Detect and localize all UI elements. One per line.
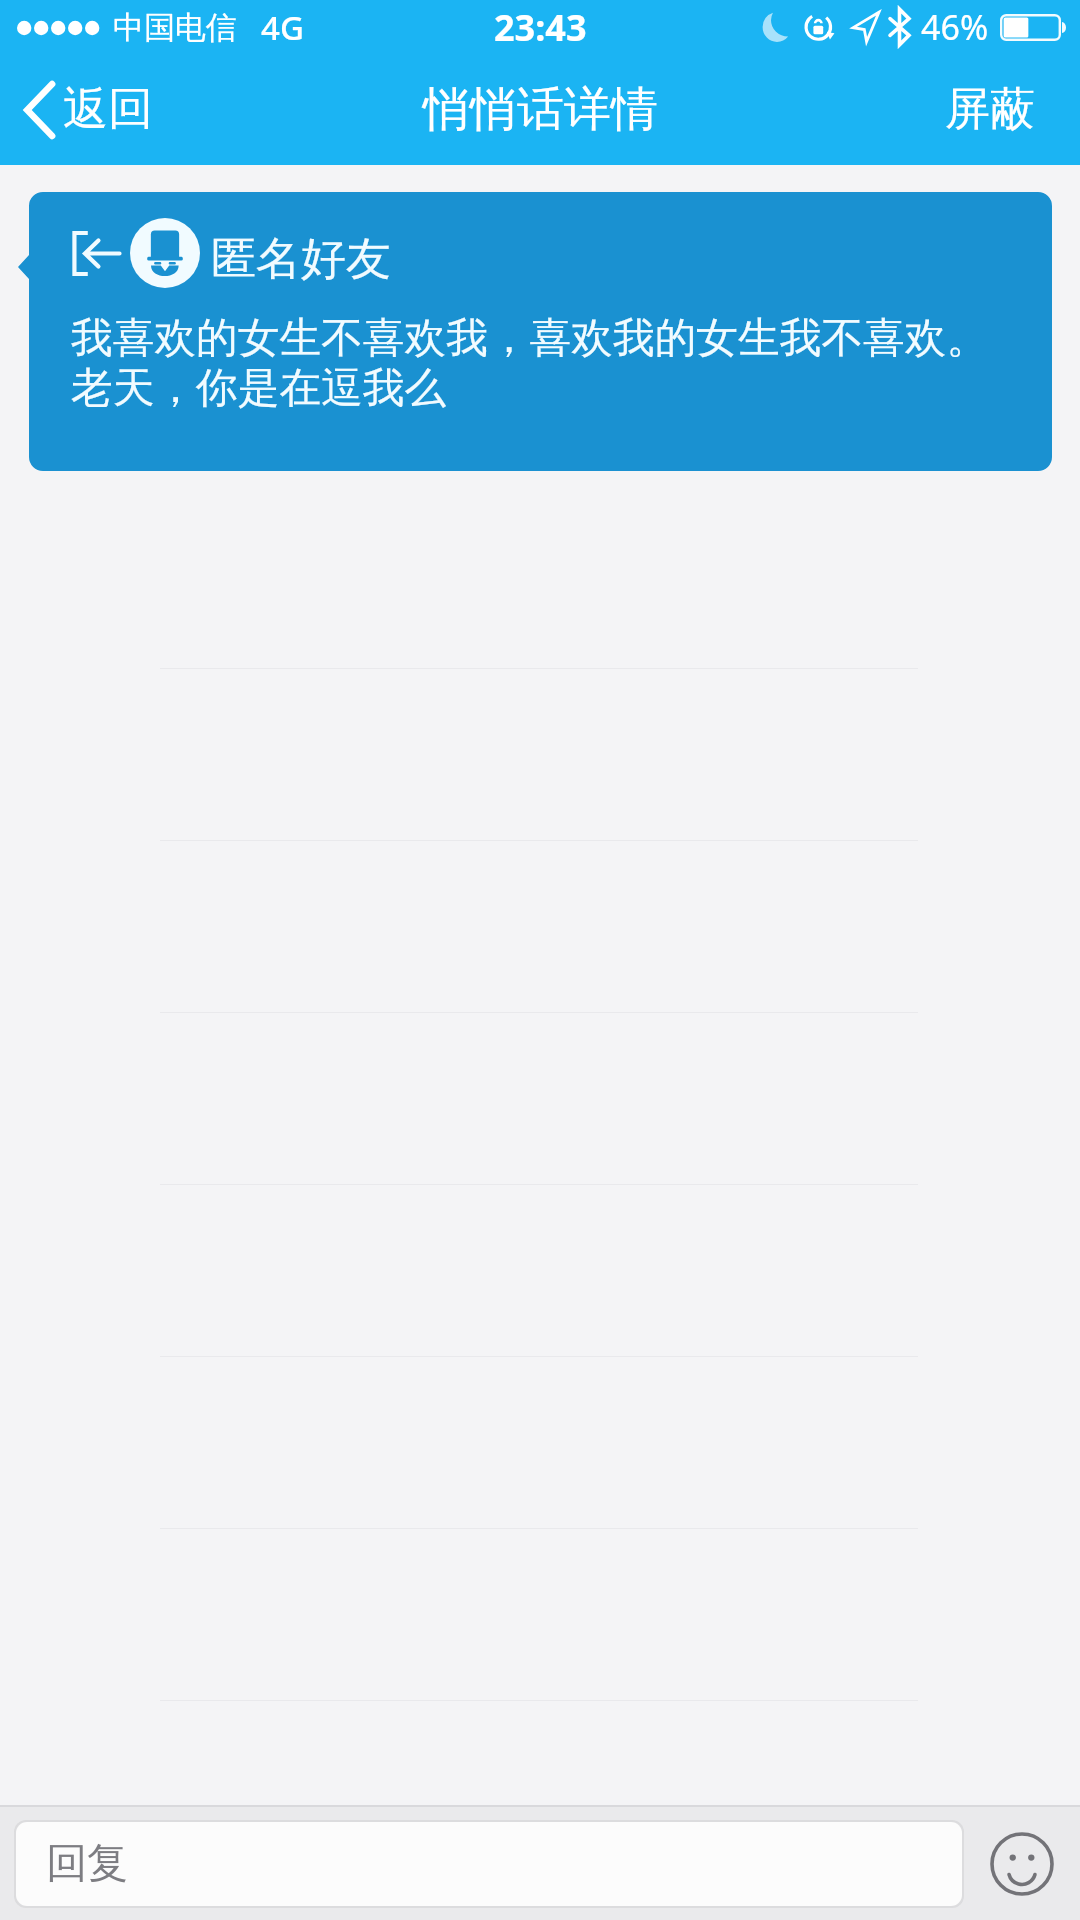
staticText: 23:43 [494,3,587,52]
staticText: 返回 [63,81,153,138]
staticText: 悄悄话详情 [423,80,658,139]
button[interactable]: 回复 [16,1822,962,1906]
button[interactable]: Anonymous [18,192,1052,471]
staticText: 屏蔽 [945,81,1035,138]
staticText: 匿名好友 [211,231,391,288]
button[interactable]: Emoji [964,1807,1080,1920]
staticText: 46% [921,4,989,50]
staticText: 回复 [46,1838,128,1890]
staticText: 我喜欢的女生不喜欢我，喜欢我的女生我不喜欢。 老天，你是在逗我么 [71,312,989,415]
button[interactable]: 屏蔽 [919,67,1080,152]
other: Anonymous [71,231,120,276]
staticText: 4G [261,5,304,50]
staticText: 中国电信 [113,8,237,47]
button[interactable]: 返回 [0,67,175,152]
